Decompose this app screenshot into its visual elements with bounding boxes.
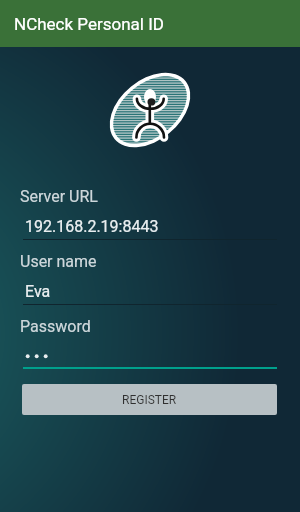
button[interactable]: NCheck Personal ID [0,0,300,47]
staticText: 192.168.2.19:8443 [25,217,159,236]
staticText: Password [20,317,91,336]
staticText: Eva [25,282,51,301]
staticText: User name [20,252,97,271]
staticText: Server URL [20,187,98,206]
staticText: NCheck Personal ID [14,14,164,34]
staticText: REGISTER [122,393,177,407]
button[interactable]: REGISTER [22,384,277,415]
